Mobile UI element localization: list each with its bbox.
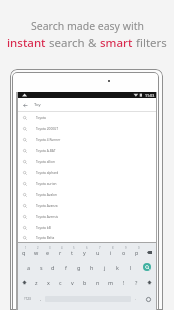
- staticText: Toyota 2000GT: [36, 127, 59, 131]
- staticText: ?123: [24, 297, 31, 301]
- staticText: a: [27, 264, 31, 271]
- button[interactable]: z: [30, 275, 42, 289]
- button[interactable]: h: [85, 260, 98, 274]
- button[interactable]: l: [124, 260, 137, 274]
- button[interactable]: 9: [117, 245, 130, 257]
- staticText: 2: [37, 246, 39, 250]
- button[interactable]: 0: [130, 245, 143, 257]
- button[interactable]: Toyota Avalon: [18, 189, 156, 200]
- button[interactable]: ,: [36, 292, 45, 306]
- staticText: Toyota 4 Runner: [36, 138, 61, 142]
- button[interactable]: Toyota: [18, 112, 156, 123]
- button[interactable]: Toyota 4 Runner: [18, 134, 156, 145]
- staticText: Toyota bB: [36, 226, 51, 230]
- staticText: 6: [86, 246, 88, 250]
- staticText: y: [83, 249, 86, 256]
- button[interactable]: Back: [18, 98, 156, 112]
- button[interactable]: Toyota alphard: [18, 167, 156, 178]
- staticText: !: [123, 279, 125, 286]
- button[interactable]: a: [23, 260, 35, 274]
- button[interactable]: 5: [66, 245, 78, 257]
- staticText: 0: [138, 246, 140, 250]
- button[interactable]: Backspace: [143, 245, 156, 257]
- staticText: m: [108, 279, 114, 286]
- button[interactable]: Toyota A-BAT: [18, 145, 156, 156]
- staticText: n: [96, 279, 100, 286]
- button[interactable]: Shift: [18, 275, 30, 289]
- button[interactable]: m: [104, 275, 117, 289]
- button[interactable]: v: [66, 275, 78, 289]
- staticText: Toyota Avalon: [36, 193, 57, 197]
- button[interactable]: Toyota 2000GT: [18, 123, 156, 134]
- staticText: smart: [100, 35, 133, 51]
- staticText: Toyota Avensis: [36, 215, 59, 219]
- button[interactable]: 4: [54, 245, 66, 257]
- button[interactable]: Toyota Avensis: [18, 211, 156, 222]
- staticText: p: [135, 249, 139, 256]
- button[interactable]: Toyota Avanza: [18, 200, 156, 211]
- staticText: search: [46, 35, 88, 51]
- staticText: x: [47, 279, 50, 286]
- staticText: Toyota Belta: [36, 236, 55, 240]
- button[interactable]: Toyota Belta: [18, 233, 156, 242]
- button[interactable]: d: [47, 260, 59, 274]
- staticText: l: [130, 264, 132, 271]
- staticText: 11:03: [145, 93, 155, 98]
- button[interactable]: c: [54, 275, 66, 289]
- button[interactable]: !: [117, 275, 130, 289]
- staticText: 9: [125, 246, 127, 250]
- button[interactable]: 6: [78, 245, 91, 257]
- staticText: Toyota allion: [36, 160, 55, 164]
- staticText: 1: [25, 246, 27, 250]
- staticText: i: [110, 249, 112, 256]
- staticText: d: [51, 264, 55, 271]
- staticText: Toy: [34, 102, 41, 108]
- button[interactable]: Toyota bB: [18, 222, 156, 233]
- staticText: &: [88, 35, 100, 51]
- staticText: v: [71, 279, 74, 286]
- button[interactable]: ?123: [18, 292, 36, 306]
- staticText: f: [65, 264, 67, 271]
- staticText: g: [77, 264, 81, 271]
- staticText: h: [90, 264, 94, 271]
- button[interactable]: n: [91, 275, 104, 289]
- button[interactable]: Toyota aurion: [18, 178, 156, 189]
- staticText: Toyota alphard: [36, 171, 59, 175]
- button[interactable]: Back: [23, 103, 28, 108]
- staticText: 5: [73, 246, 75, 250]
- button[interactable]: Toyota allion: [18, 156, 156, 167]
- button[interactable]: 7: [91, 245, 104, 257]
- staticText: z: [35, 279, 38, 286]
- staticText: b: [83, 279, 87, 286]
- staticText: w: [34, 249, 39, 256]
- staticText: s: [40, 264, 43, 271]
- button[interactable]: g: [72, 260, 85, 274]
- staticText: Toyota A-BAT: [36, 149, 56, 153]
- button[interactable]: ?: [130, 275, 143, 289]
- staticText: 3: [49, 246, 51, 250]
- button[interactable]: j: [98, 260, 111, 274]
- button[interactable]: b: [78, 275, 91, 289]
- button[interactable]: 3: [42, 245, 54, 257]
- staticText: o: [122, 249, 126, 256]
- staticText: 7: [99, 246, 101, 250]
- staticText: 8: [112, 246, 114, 250]
- staticText: ?: [135, 279, 138, 286]
- button[interactable]: x: [42, 275, 54, 289]
- button[interactable]: 8: [104, 245, 117, 257]
- staticText: filters: [133, 35, 167, 51]
- button[interactable]: k: [111, 260, 124, 274]
- button[interactable]: Shift: [143, 275, 156, 289]
- button[interactable]: 1: [18, 245, 30, 257]
- staticText: e: [46, 249, 50, 256]
- button[interactable]: s: [35, 260, 47, 274]
- button[interactable]: 2: [30, 245, 42, 257]
- button[interactable]: f: [59, 260, 72, 274]
- staticText: t: [71, 249, 73, 256]
- button[interactable]: Search: [143, 263, 151, 271]
- staticText: c: [59, 279, 62, 286]
- staticText: Toyota: [36, 116, 46, 120]
- button[interactable]: Emoji: [140, 292, 156, 306]
